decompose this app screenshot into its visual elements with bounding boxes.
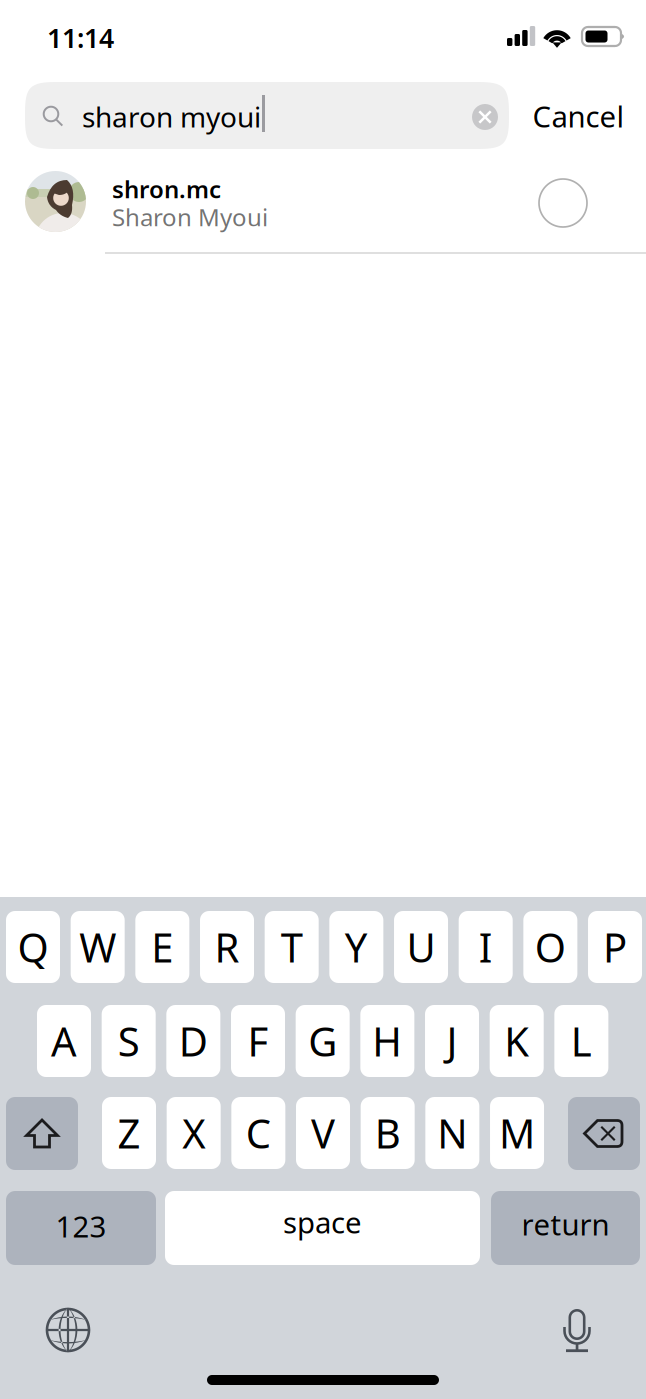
button[interactable]: H xyxy=(360,1005,414,1077)
button[interactable]: B xyxy=(361,1097,415,1169)
button[interactable]: A xyxy=(37,1005,91,1077)
button[interactable]: I xyxy=(459,911,513,983)
button[interactable]: Cancel xyxy=(531,87,626,145)
staticText: shron.mc xyxy=(112,173,221,205)
staticText: V xyxy=(311,1106,335,1159)
button[interactable]: shron.mc xyxy=(0,160,646,253)
button[interactable]: Dictate xyxy=(558,1309,596,1353)
button[interactable]: C xyxy=(231,1097,285,1169)
staticText: R xyxy=(214,920,239,973)
button[interactable]: Y xyxy=(329,911,383,983)
staticText: H xyxy=(372,1014,402,1067)
staticText: C xyxy=(246,1106,271,1159)
staticText: A xyxy=(51,1014,77,1067)
button[interactable]: F xyxy=(231,1005,285,1077)
button[interactable]: R xyxy=(200,911,254,983)
button[interactable]: X xyxy=(167,1097,221,1169)
staticText: B xyxy=(375,1106,401,1159)
button[interactable]: Z xyxy=(102,1097,156,1169)
button[interactable]: T xyxy=(265,911,319,983)
staticText: P xyxy=(603,920,627,973)
staticText: 123 xyxy=(55,1206,106,1245)
staticText: Cancel xyxy=(532,96,624,135)
button[interactable]: V xyxy=(296,1097,350,1169)
button[interactable]: U xyxy=(394,911,448,983)
button[interactable]: D xyxy=(166,1005,220,1077)
staticText: E xyxy=(151,920,173,973)
staticText: M xyxy=(499,1106,535,1159)
button[interactable]: E xyxy=(135,911,189,983)
staticText: N xyxy=(437,1106,467,1159)
button[interactable]: Q xyxy=(6,911,60,983)
button[interactable]: K xyxy=(490,1005,544,1077)
staticText: K xyxy=(504,1014,529,1067)
staticText: T xyxy=(281,920,303,973)
button[interactable]: W xyxy=(71,911,125,983)
button[interactable]: M xyxy=(490,1097,544,1169)
staticText: Z xyxy=(117,1106,140,1159)
staticText: Y xyxy=(345,920,368,973)
button[interactable]: space xyxy=(165,1191,480,1265)
button[interactable]: J xyxy=(425,1005,479,1077)
button[interactable]: return xyxy=(491,1191,640,1265)
staticText: I xyxy=(479,920,493,973)
staticText: L xyxy=(571,1014,592,1067)
staticText: O xyxy=(535,920,566,973)
button[interactable]: G xyxy=(296,1005,350,1077)
staticText: 11:14 xyxy=(47,20,114,55)
button[interactable]: sharon myoui xyxy=(25,82,509,149)
staticText: sharon myoui xyxy=(82,98,261,135)
staticText: space xyxy=(283,1202,362,1241)
staticText: Sharon Myoui xyxy=(112,201,268,233)
staticText: W xyxy=(79,920,116,973)
button[interactable]: S xyxy=(102,1005,156,1077)
button[interactable]: Delete xyxy=(568,1097,640,1170)
button[interactable]: Clear text xyxy=(472,104,498,130)
button[interactable]: L xyxy=(554,1005,608,1077)
staticText: X xyxy=(182,1106,205,1159)
staticText: D xyxy=(179,1014,208,1067)
staticText: U xyxy=(406,920,435,973)
button[interactable]: P xyxy=(588,911,642,983)
staticText: return xyxy=(521,1204,609,1243)
staticText: S xyxy=(118,1014,140,1067)
staticText: F xyxy=(247,1014,268,1067)
staticText: Q xyxy=(17,920,48,973)
button[interactable]: Shift xyxy=(6,1097,78,1170)
button[interactable]: N xyxy=(425,1097,479,1169)
staticText: G xyxy=(308,1014,337,1067)
staticText: J xyxy=(446,1014,457,1067)
button[interactable]: 123 xyxy=(6,1191,156,1265)
button[interactable]: Next keyboard xyxy=(45,1307,91,1353)
button[interactable]: O xyxy=(523,911,577,983)
